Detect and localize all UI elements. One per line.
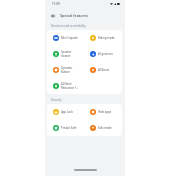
staticText: AI Boost xyxy=(98,68,110,72)
button[interactable]: AI Boost xyxy=(84,62,122,78)
staticText: Private Safe xyxy=(61,126,77,130)
staticText: Button xyxy=(61,70,70,74)
staticText: AI Noise xyxy=(61,82,72,86)
button[interactable]: Speaker xyxy=(47,46,84,62)
staticText: App Lock xyxy=(61,110,73,114)
staticText: Special features xyxy=(60,13,88,18)
button[interactable]: Kids mode xyxy=(84,120,122,136)
staticText: Riding mode xyxy=(98,36,115,40)
button[interactable]: AI Noise xyxy=(47,78,84,94)
staticText: Kids mode xyxy=(98,126,112,130)
staticText: Reduction f… xyxy=(61,86,79,90)
staticText: Shortcuts and accessibility xyxy=(51,24,86,28)
staticText: Security xyxy=(51,98,62,102)
button[interactable]: Dynamic xyxy=(47,62,84,78)
button[interactable]: Hide apps xyxy=(84,104,122,120)
button[interactable]: App Lock xyxy=(47,104,84,120)
button[interactable]: Private Safe xyxy=(47,120,84,136)
staticText: cleaner xyxy=(61,54,71,58)
staticText: Speaker xyxy=(61,50,72,54)
staticText: Hide apps xyxy=(98,110,112,114)
button[interactable]: AI gestures xyxy=(84,46,122,62)
staticText: Mini Capsule xyxy=(61,36,78,40)
staticText: AI gestures xyxy=(98,52,113,56)
button[interactable]: Mini Capsule xyxy=(47,30,84,46)
button[interactable]: Back xyxy=(48,11,57,20)
staticText: Dynamic xyxy=(61,66,73,70)
staticText: 11:09 xyxy=(52,2,60,6)
button[interactable]: Riding mode xyxy=(84,30,122,46)
